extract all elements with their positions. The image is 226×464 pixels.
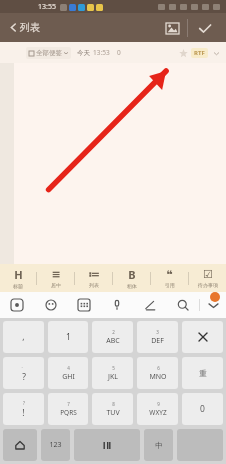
button[interactable]: ≔	[75, 264, 112, 292]
staticText: ?	[23, 400, 25, 406]
staticText: 。	[21, 364, 26, 370]
staticText: ≡	[51, 268, 61, 281]
staticText: 4	[67, 365, 70, 371]
staticText: 2	[112, 329, 115, 335]
button[interactable]: Search	[166, 292, 199, 318]
staticText: RTF	[194, 49, 205, 57]
staticText: H	[14, 267, 23, 282]
staticText: ≔	[88, 268, 100, 281]
staticText: JKL	[108, 372, 118, 382]
button[interactable]: 4	[48, 357, 88, 389]
button[interactable]: More	[208, 45, 224, 61]
staticText: 0	[200, 403, 205, 415]
staticText: PQRS	[60, 408, 77, 417]
button[interactable]: 3	[137, 321, 178, 353]
button[interactable]: 6	[137, 357, 178, 389]
button[interactable]: 9	[137, 393, 178, 425]
button[interactable]: 1	[48, 321, 88, 353]
button[interactable]: Home	[3, 429, 37, 461]
staticText: TUV	[106, 408, 120, 418]
button[interactable]: RTF	[191, 48, 208, 58]
staticText: 重	[199, 369, 207, 378]
staticText: 列表	[20, 21, 40, 34]
staticText: ❝	[166, 268, 173, 281]
staticText: 0	[117, 48, 121, 57]
button[interactable]: ?	[3, 393, 44, 425]
staticText: DEF	[151, 336, 164, 346]
staticText: 引用	[165, 282, 175, 288]
staticText: 6	[157, 365, 160, 371]
staticText: ,	[22, 331, 25, 343]
staticText: 居中	[51, 282, 61, 288]
button[interactable]: H	[0, 264, 36, 292]
button[interactable]: Hide keyboard	[200, 292, 226, 318]
button[interactable]: 重	[182, 357, 223, 389]
staticText: 5	[112, 365, 115, 371]
button[interactable]: Space	[74, 429, 140, 461]
staticText: GHI	[62, 372, 75, 382]
button[interactable]: 列表	[7, 18, 43, 37]
staticText: MNO	[149, 372, 167, 382]
staticText: !	[22, 407, 25, 419]
button[interactable]: ❝	[151, 264, 188, 292]
button[interactable]: B	[113, 264, 150, 292]
button[interactable]: 123	[41, 429, 70, 461]
staticText: ABC	[106, 336, 120, 346]
staticText: 列表	[89, 282, 99, 288]
staticText: 13:55	[38, 2, 56, 12]
button[interactable]: 0	[182, 393, 223, 425]
button[interactable]: Sogou	[0, 292, 34, 318]
staticText: 标题	[13, 283, 23, 289]
staticText: 7	[67, 401, 70, 407]
staticText: 3	[156, 329, 159, 335]
button[interactable]: Done	[188, 17, 222, 39]
button[interactable]: ,	[3, 321, 44, 353]
button[interactable]: 。	[3, 357, 44, 389]
button[interactable]: Keyboard	[67, 292, 100, 318]
button[interactable]: Handwriting	[133, 292, 166, 318]
staticText: ☑	[203, 268, 213, 281]
staticText: ?	[22, 371, 26, 383]
button[interactable]: Delete	[182, 321, 223, 353]
staticText: 123	[49, 440, 62, 450]
staticText: 13:53	[93, 48, 110, 57]
button[interactable]: Insert image	[157, 17, 187, 39]
staticText: 全部便签	[36, 49, 62, 57]
button[interactable]: 中	[144, 429, 173, 461]
staticText: 9	[157, 401, 160, 407]
staticText: 粗体	[127, 283, 137, 289]
staticText: 今天	[77, 49, 90, 57]
button[interactable]: Voice	[100, 292, 133, 318]
staticText: 待办事项	[198, 282, 218, 288]
staticText: 8	[112, 401, 115, 407]
button[interactable]: 8	[92, 393, 133, 425]
button[interactable]: 全部便签	[26, 47, 71, 59]
button[interactable]: Favorite	[175, 45, 191, 61]
button[interactable]: 5	[92, 357, 133, 389]
staticText: 1	[66, 331, 71, 343]
staticText: 中	[155, 441, 163, 450]
button[interactable]: ≡	[37, 264, 74, 292]
staticText: B	[128, 267, 136, 282]
button[interactable]: ☑	[189, 264, 226, 292]
button[interactable]: Emoji	[34, 292, 67, 318]
button[interactable]: 2	[92, 321, 133, 353]
staticText: WXYZ	[149, 408, 167, 417]
button[interactable]: 7	[48, 393, 88, 425]
